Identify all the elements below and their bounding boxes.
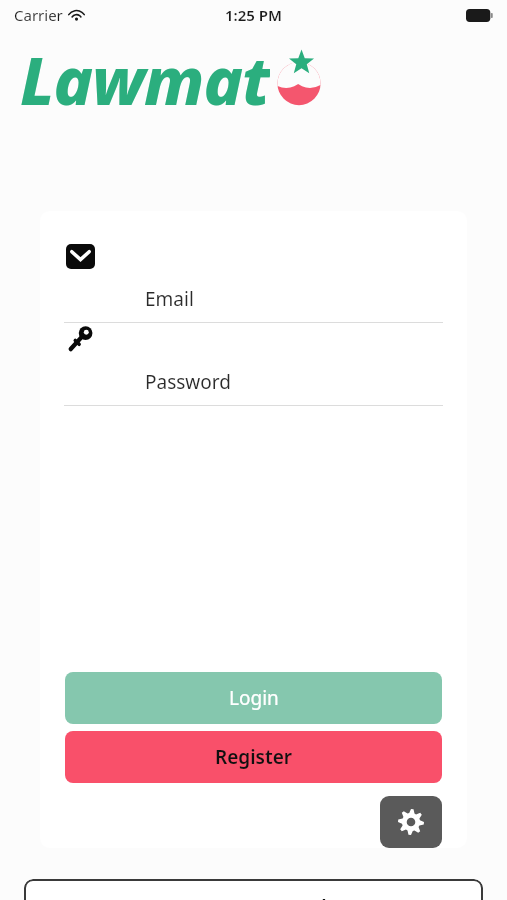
staticText: Login — [229, 685, 279, 711]
staticText: Email — [145, 286, 194, 312]
staticText: Carrier — [14, 5, 63, 25]
button[interactable]: Register — [65, 731, 442, 783]
staticText: Register — [215, 744, 293, 770]
button[interactable]: Login — [65, 672, 442, 724]
staticText: 1:25 PM — [225, 5, 282, 25]
button[interactable]: Reset Password — [24, 879, 483, 900]
staticText: Password — [145, 369, 231, 395]
staticText: Lawmat — [20, 34, 270, 116]
button[interactable]: Settings — [380, 796, 442, 848]
staticText: Reset Password — [181, 894, 327, 900]
